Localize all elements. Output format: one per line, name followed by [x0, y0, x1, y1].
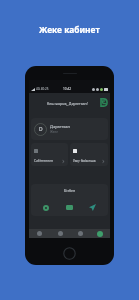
staticText: Уақт бойынша: [73, 159, 96, 163]
button[interactable]: Home: [29, 229, 50, 238]
button[interactable]: Telegram: [89, 204, 96, 211]
staticText: Кеш жарық, Дәулетхан!: [47, 101, 88, 106]
staticText: Бізбен: [64, 188, 76, 193]
staticText: 4G 40:25: [36, 87, 49, 91]
staticText: Жеке кабинет: [39, 24, 100, 35]
staticText: Жеке: [50, 130, 58, 134]
staticText: 10:42: [63, 87, 72, 91]
button[interactable]: Logo: [99, 98, 108, 107]
staticText: Дәулетхан: [50, 124, 70, 129]
button[interactable]: Profile: [90, 229, 110, 238]
button[interactable]: Сәбіттеннен: [31, 143, 68, 166]
button[interactable]: Уақт бойынша: [70, 143, 108, 166]
button[interactable]: WhatsApp: [42, 204, 49, 211]
staticText: D: [39, 126, 43, 133]
button[interactable]: Orders: [50, 229, 70, 238]
staticText: Сәбіттеннен: [34, 159, 53, 163]
button[interactable]: Catalog: [70, 229, 90, 238]
button[interactable]: D: [31, 118, 108, 140]
button[interactable]: Messenger: [66, 204, 73, 211]
